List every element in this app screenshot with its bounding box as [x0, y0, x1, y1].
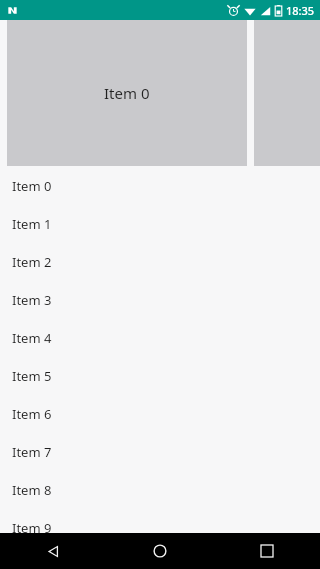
staticText: Item 8 — [12, 481, 52, 499]
button[interactable]: Recent apps — [213, 533, 320, 569]
button[interactable]: Item 0 — [7, 20, 247, 166]
button[interactable]: Item 4 — [0, 319, 320, 357]
staticText: Item 2 — [12, 253, 52, 271]
staticText: Item 9 — [12, 519, 52, 537]
staticText: Item 6 — [12, 405, 52, 423]
staticText: Item 7 — [12, 443, 52, 461]
staticText: Item 3 — [12, 291, 52, 309]
button[interactable]: Home — [106, 533, 213, 569]
button[interactable]: Back — [0, 533, 106, 569]
staticText: Item 0 — [12, 177, 52, 195]
button[interactable]: Item 2 — [0, 243, 320, 281]
button[interactable]: Item 0 — [0, 167, 320, 205]
other: Android — [7, 5, 18, 16]
button[interactable]: Item 8 — [0, 471, 320, 509]
staticText: 18:35 — [286, 3, 315, 18]
button[interactable]: Item 5 — [0, 357, 320, 395]
staticText: Item 0 — [104, 83, 150, 103]
staticText: Item 1 — [12, 215, 52, 233]
staticText: Item 4 — [12, 329, 52, 347]
button[interactable]: Item 3 — [0, 281, 320, 319]
button[interactable]: Item 6 — [0, 395, 320, 433]
staticText: Item 5 — [12, 367, 52, 385]
button[interactable]: Item 1 — [0, 205, 320, 243]
button[interactable]: Item 7 — [0, 433, 320, 471]
button[interactable]: Item 9 — [0, 509, 320, 547]
